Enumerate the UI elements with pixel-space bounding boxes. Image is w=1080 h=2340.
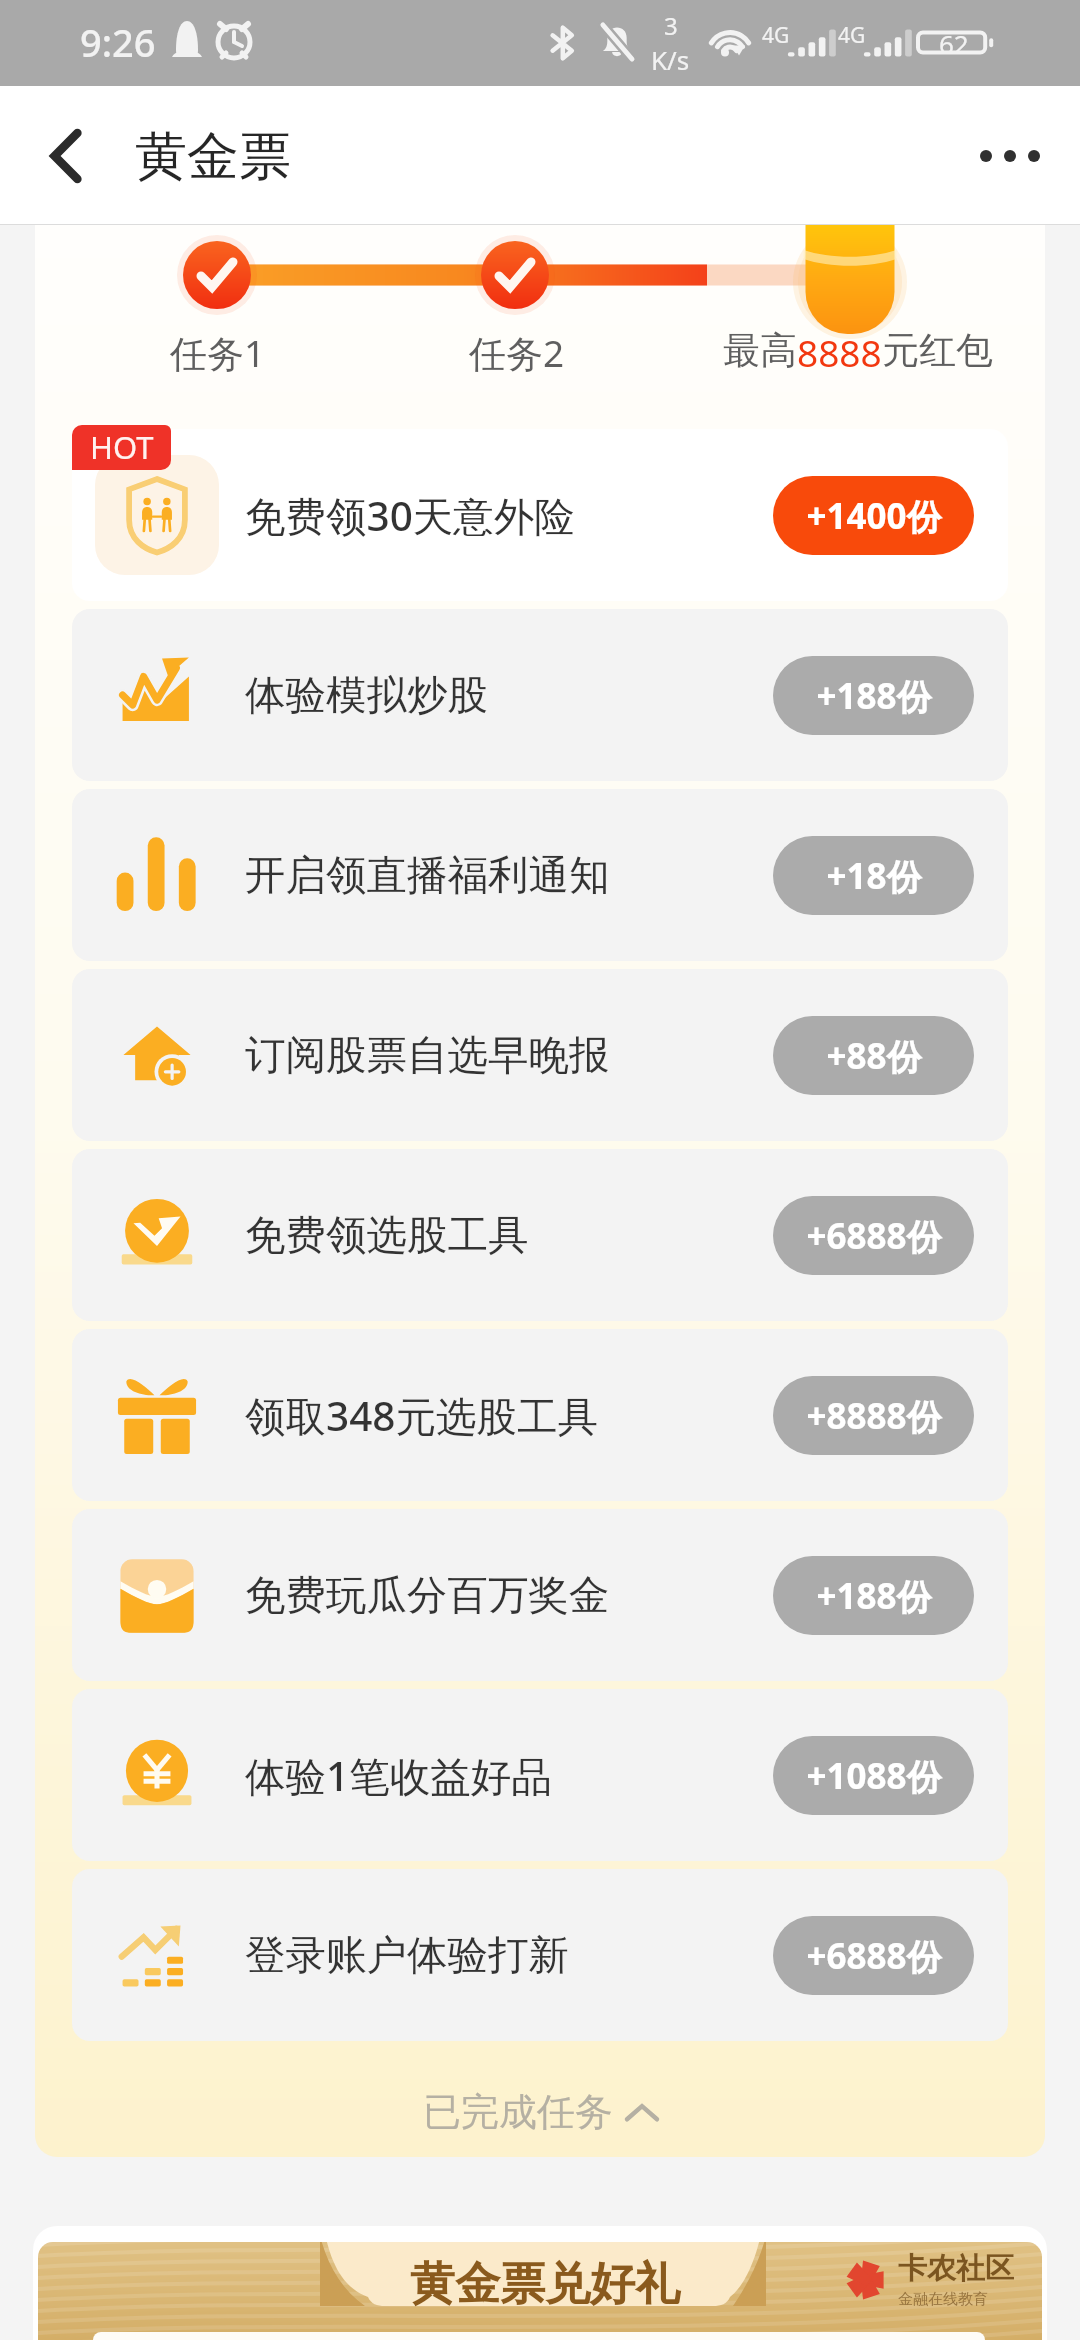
button[interactable]: 免费领30天意外险 [72, 429, 1008, 601]
staticText: 4G [762, 21, 790, 50]
staticText: +188份 [816, 672, 932, 720]
button[interactable]: 已完成任务 [35, 2079, 1045, 2145]
staticText: 62 [939, 26, 969, 61]
staticText: 最高 [723, 327, 797, 374]
button[interactable]: 免费玩瓜分百万奖金 [72, 1509, 1008, 1681]
button[interactable]: +1400份 [773, 476, 974, 555]
button[interactable]: Back [20, 111, 110, 201]
staticText: 免费玩瓜分百万奖金 [245, 1570, 610, 1621]
button[interactable]: 免费领选股工具 [72, 1149, 1008, 1321]
staticText: 金融在线教育 [898, 2290, 988, 2309]
staticText: +88份 [826, 1032, 922, 1080]
button[interactable]: 开启领直播福利通知 [72, 789, 1008, 961]
staticText: 开启领直播福利通知 [245, 850, 610, 901]
staticText: 任务1 [170, 327, 266, 378]
button[interactable]: +6888份 [773, 1916, 974, 1995]
button[interactable]: +188份 [773, 656, 974, 735]
button[interactable]: 体验1笔收益好品 [72, 1689, 1008, 1861]
staticText: +8888份 [806, 1392, 942, 1440]
staticText: 免费领选股工具 [245, 1210, 529, 1261]
button[interactable]: +8888份 [773, 1376, 974, 1455]
staticText: 登录账户体验打新 [245, 1930, 569, 1981]
button[interactable]: More options [964, 110, 1056, 202]
staticText: 卡农社区 [898, 2250, 1014, 2287]
staticText: 领取348元选股工具 [245, 1388, 598, 1443]
button[interactable]: 登录账户体验打新 [72, 1869, 1008, 2041]
staticText: +1400份 [806, 492, 942, 540]
staticText: 4G [838, 21, 866, 50]
button[interactable]: +18份 [773, 836, 974, 915]
button[interactable]: 体验模拟炒股 [72, 609, 1008, 781]
staticText: +1088份 [806, 1752, 942, 1800]
staticText: K/s [651, 42, 690, 77]
button[interactable]: +188份 [773, 1556, 974, 1635]
staticText: +6888份 [806, 1932, 942, 1980]
staticText: 订阅股票自选早晚报 [245, 1030, 610, 1081]
button[interactable]: 订阅股票自选早晚报 [72, 969, 1008, 1141]
staticText: 体验1笔收益好品 [245, 1748, 552, 1803]
staticText: 元红包 [882, 327, 993, 374]
staticText: 8888 [797, 327, 882, 377]
staticText: 3 [664, 9, 678, 42]
staticText: +18份 [826, 852, 922, 900]
button[interactable]: 黄金票兑好礼 [38, 2242, 1042, 2340]
staticText: 黄金票 [135, 124, 291, 190]
staticText: 已完成任务 [423, 2088, 613, 2136]
staticText: +6888份 [806, 1212, 942, 1260]
button[interactable]: +1088份 [773, 1736, 974, 1815]
staticText: 任务2 [469, 327, 565, 378]
button[interactable]: +6888份 [773, 1196, 974, 1275]
staticText: 免费领30天意外险 [245, 488, 575, 543]
staticText: 9:26 [80, 16, 156, 68]
button[interactable]: 领取348元选股工具 [72, 1329, 1008, 1501]
staticText: 黄金票兑好礼 [410, 2256, 680, 2313]
staticText: +188份 [816, 1572, 932, 1620]
staticText: HOT [90, 426, 154, 468]
staticText: 体验模拟炒股 [245, 670, 488, 721]
button[interactable]: +88份 [773, 1016, 974, 1095]
